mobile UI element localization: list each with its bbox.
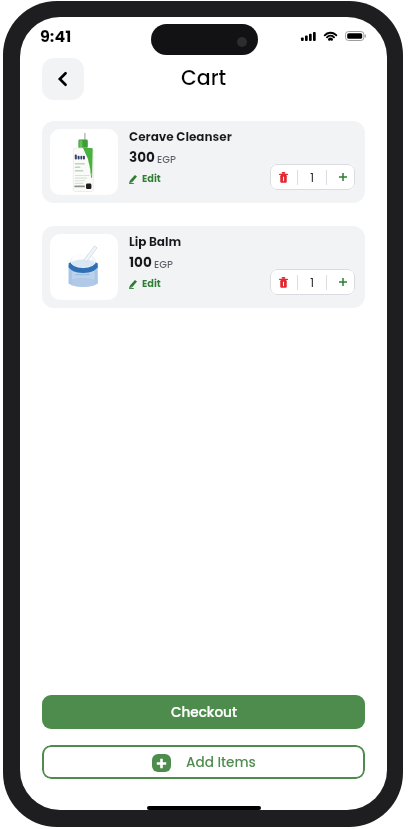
button[interactable]: Cerave Cleanser [42,121,365,203]
staticText: EGP [157,152,176,166]
button[interactable]: Increase quantity [327,164,355,190]
staticText: 1 [310,168,315,186]
staticText: EGP [154,257,173,271]
staticText: Cart [181,63,227,92]
staticText: Edit [142,172,161,186]
staticText: Lip Balm [129,233,182,250]
button[interactable]: Delete [270,164,297,190]
button[interactable]: Add Items [42,745,365,779]
staticText: Cerave Cleanser [129,128,232,145]
staticText: Edit [142,277,161,291]
button[interactable]: Lip Balm [42,226,365,308]
staticText: 100 [129,253,152,272]
button[interactable]: Edit [129,277,161,291]
button[interactable]: Back [42,58,84,100]
button[interactable]: Checkout [42,695,365,729]
button[interactable]: Increase quantity [327,269,355,295]
button[interactable]: Edit [129,172,161,186]
staticText: Checkout [171,703,237,722]
staticText: 300 [129,148,155,167]
staticText: 9:41 [40,25,72,47]
staticText: 1 [310,273,315,291]
staticText: Add Items [186,753,256,772]
button[interactable]: Delete [270,269,297,295]
